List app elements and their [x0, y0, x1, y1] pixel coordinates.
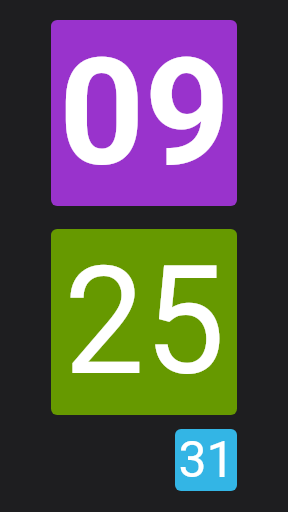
button[interactable]: 09	[51, 20, 237, 206]
staticText: 09	[59, 26, 230, 201]
staticText: 25	[64, 234, 225, 410]
staticText: 31	[178, 431, 235, 490]
button[interactable]: 25	[51, 229, 237, 415]
button[interactable]: 31	[175, 429, 237, 491]
